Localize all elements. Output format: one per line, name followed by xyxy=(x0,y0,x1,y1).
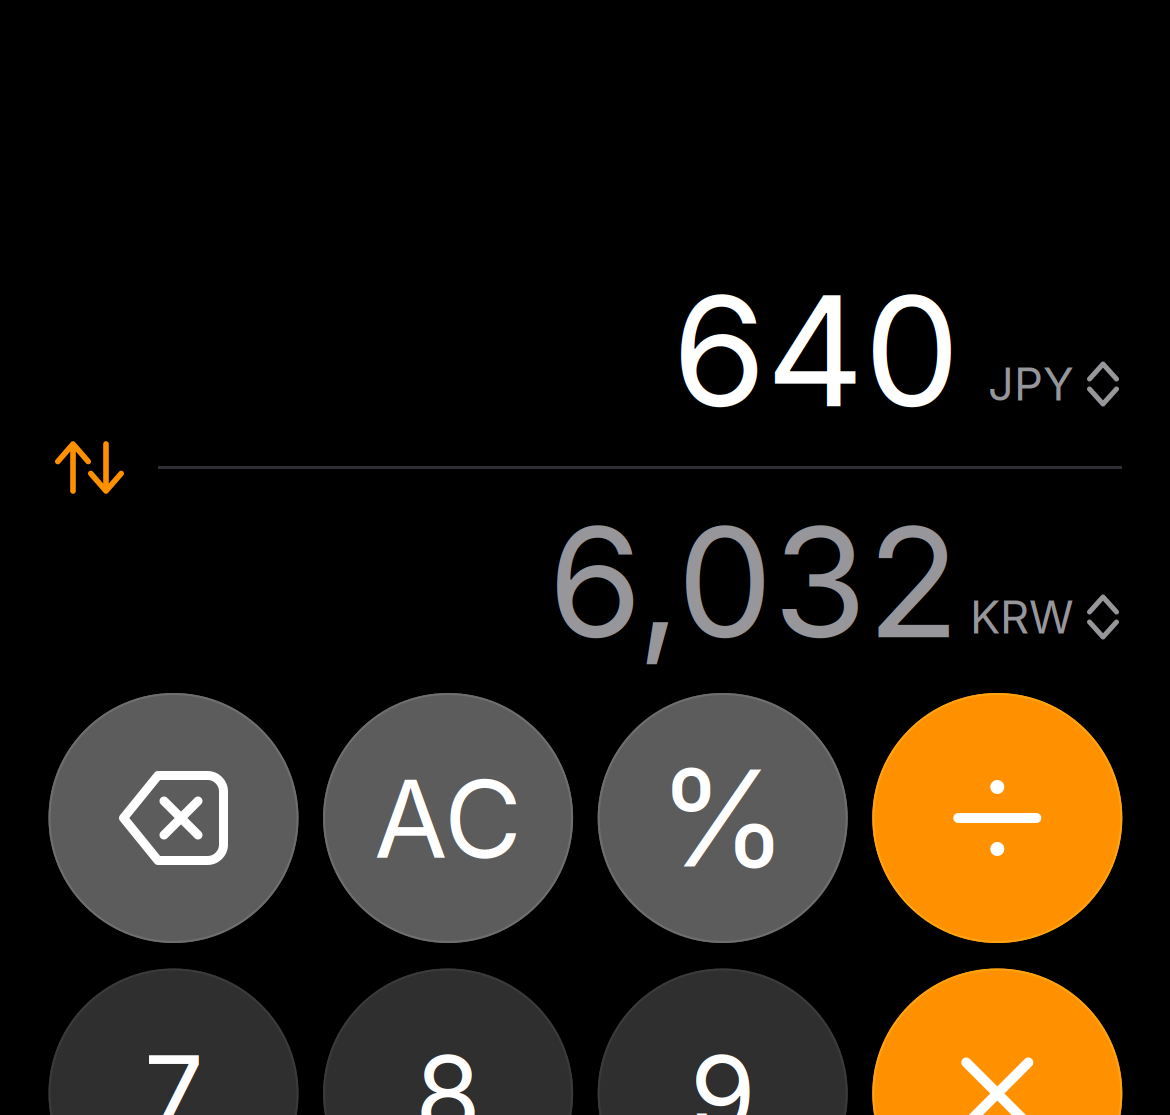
button[interactable]: Multiply xyxy=(872,968,1122,1115)
staticText: 6,032 xyxy=(548,490,960,674)
button[interactable]: % xyxy=(598,693,848,943)
staticText: 640 xyxy=(672,259,960,443)
button[interactable]: JPY xyxy=(939,353,1119,415)
button[interactable]: KRW xyxy=(939,586,1119,648)
staticText: AC xyxy=(374,754,522,884)
staticText: % xyxy=(657,737,788,899)
staticText: KRW xyxy=(970,590,1074,644)
button[interactable]: 9 xyxy=(598,968,848,1115)
button[interactable]: Delete xyxy=(48,693,298,943)
staticText: JPY xyxy=(988,357,1074,411)
staticText: 8 xyxy=(415,1030,481,1115)
button[interactable]: 7 xyxy=(48,968,298,1115)
button[interactable]: 8 xyxy=(323,968,573,1115)
button[interactable]: Swap currencies xyxy=(56,441,122,494)
button[interactable]: AC xyxy=(323,693,573,943)
staticText: 7 xyxy=(143,1030,203,1115)
button[interactable]: Divide xyxy=(872,693,1122,943)
staticText: 9 xyxy=(690,1030,756,1115)
